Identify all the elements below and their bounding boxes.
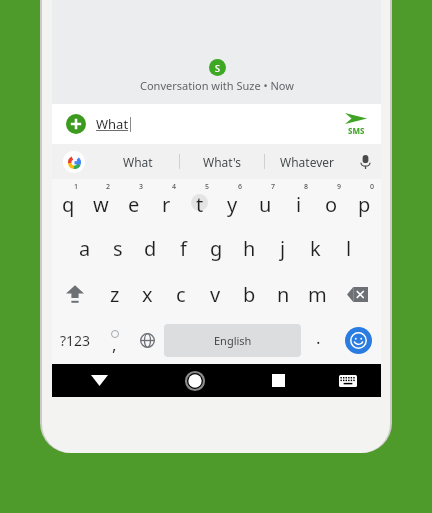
button[interactable]: Hide keyboard	[314, 364, 381, 397]
staticText: Whatever	[280, 154, 334, 170]
staticText: 0	[370, 182, 375, 192]
staticText: 7	[271, 182, 276, 192]
staticText: S	[215, 62, 220, 74]
button[interactable]: 7	[249, 179, 282, 225]
button[interactable]: h	[233, 225, 266, 271]
button[interactable]: Recents	[242, 364, 314, 397]
staticText: ,	[112, 333, 117, 356]
staticText: d	[144, 235, 157, 262]
staticText: h	[243, 235, 256, 262]
staticText: 4	[172, 182, 177, 192]
button[interactable]: Backspace	[334, 271, 381, 317]
staticText: m	[308, 281, 327, 308]
button[interactable]: Whatever	[265, 144, 349, 179]
staticText: 2	[106, 182, 111, 192]
button[interactable]: Send SMS	[345, 112, 367, 136]
button[interactable]: 8	[282, 179, 315, 225]
button[interactable]: 6	[216, 179, 249, 225]
button[interactable]: What's	[180, 144, 264, 179]
staticText: l	[346, 235, 352, 262]
button[interactable]: What	[96, 115, 131, 133]
staticText: SMS	[348, 125, 365, 136]
staticText: a	[79, 235, 91, 262]
staticText: z	[110, 281, 120, 308]
button[interactable]: c	[164, 271, 198, 317]
button[interactable]: Emoji	[335, 317, 381, 364]
button[interactable]: v	[198, 271, 232, 317]
button[interactable]: 5	[183, 179, 216, 225]
staticText: What	[123, 154, 153, 170]
button[interactable]: 4	[150, 179, 183, 225]
staticText: u	[259, 191, 272, 218]
staticText: English	[214, 333, 252, 348]
staticText: y	[227, 191, 238, 218]
button[interactable]: Shift	[52, 271, 98, 317]
staticText: Conversation with Suze • Now	[140, 78, 294, 93]
button[interactable]: Back	[52, 364, 147, 397]
button[interactable]: x	[131, 271, 164, 317]
staticText: .	[316, 326, 321, 349]
staticText: w	[93, 191, 109, 218]
button[interactable]: b	[232, 271, 266, 317]
staticText: 1	[74, 182, 79, 192]
staticText: 5	[205, 182, 210, 192]
staticText: f	[180, 235, 187, 262]
button[interactable]: j	[266, 225, 299, 271]
staticText: e	[128, 191, 140, 218]
button[interactable]: Comma	[99, 317, 130, 364]
staticText: p	[358, 191, 371, 218]
button[interactable]: a	[68, 225, 101, 271]
button[interactable]: k	[299, 225, 332, 271]
staticText: x	[142, 281, 153, 308]
button[interactable]: s	[101, 225, 134, 271]
button[interactable]: z	[98, 271, 131, 317]
button[interactable]: English	[164, 324, 301, 357]
button[interactable]: Add attachment	[66, 114, 86, 134]
button[interactable]: l	[332, 225, 365, 271]
staticText: q	[62, 191, 75, 218]
button[interactable]: 1	[52, 179, 84, 225]
staticText: s	[113, 235, 123, 262]
staticText: r	[162, 191, 171, 218]
staticText: g	[210, 235, 223, 262]
staticText: k	[310, 235, 321, 262]
button[interactable]: Voice input	[349, 144, 381, 179]
button[interactable]: ?123	[52, 317, 99, 364]
staticText: t	[196, 191, 204, 218]
staticText: 3	[139, 182, 144, 192]
staticText: c	[176, 281, 186, 308]
button[interactable]: 3	[117, 179, 150, 225]
button[interactable]: What	[96, 144, 179, 179]
staticText: ?123	[60, 331, 91, 350]
staticText: 6	[238, 182, 243, 192]
staticText: j	[280, 235, 286, 262]
staticText: n	[277, 281, 290, 308]
staticText: i	[296, 191, 302, 218]
button[interactable]: Period	[301, 317, 335, 364]
button[interactable]: m	[300, 271, 334, 317]
staticText: What's	[203, 154, 241, 170]
staticText: b	[243, 281, 256, 308]
staticText: 8	[304, 182, 309, 192]
button[interactable]: Switch language	[130, 317, 164, 364]
staticText: What	[96, 115, 129, 133]
staticText: o	[325, 191, 338, 218]
staticText: 9	[337, 182, 342, 192]
button[interactable]: 9	[315, 179, 348, 225]
staticText: v	[210, 281, 221, 308]
button[interactable]: n	[266, 271, 300, 317]
button[interactable]: 0	[348, 179, 381, 225]
button[interactable]: Home	[147, 364, 242, 397]
button[interactable]: 2	[84, 179, 117, 225]
button[interactable]: g	[200, 225, 233, 271]
button[interactable]: d	[134, 225, 167, 271]
button[interactable]: Google	[52, 144, 96, 179]
button[interactable]: f	[167, 225, 200, 271]
